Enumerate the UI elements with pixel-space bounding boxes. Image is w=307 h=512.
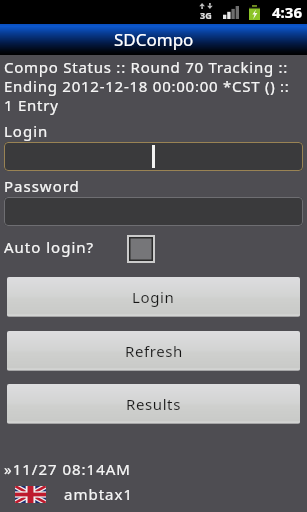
- staticText: 3G: [200, 9, 212, 21]
- button[interactable]: Login field: [4, 142, 303, 171]
- staticText: SDCompo: [114, 28, 194, 51]
- button[interactable]: »11/27 08:14AM: [0, 453, 307, 512]
- button[interactable]: Auto login checkbox: [126, 234, 156, 264]
- staticText: Results: [126, 394, 181, 414]
- staticText: Password: [4, 176, 80, 196]
- staticText: Auto login?: [4, 237, 95, 257]
- button[interactable]: Login: [7, 277, 300, 317]
- staticText: Compo Status :: Round 70 Tracking :: End…: [4, 57, 307, 115]
- button[interactable]: Results: [7, 384, 300, 424]
- button[interactable]: Password field: [4, 197, 303, 226]
- staticText: Refresh: [125, 341, 183, 361]
- staticText: Login: [132, 287, 175, 307]
- staticText: Login: [4, 121, 49, 141]
- button[interactable]: Refresh: [7, 331, 300, 371]
- staticText: ambtax1: [64, 484, 134, 504]
- staticText: 4:36: [272, 2, 302, 22]
- staticText: »11/27 08:14AM: [4, 459, 131, 479]
